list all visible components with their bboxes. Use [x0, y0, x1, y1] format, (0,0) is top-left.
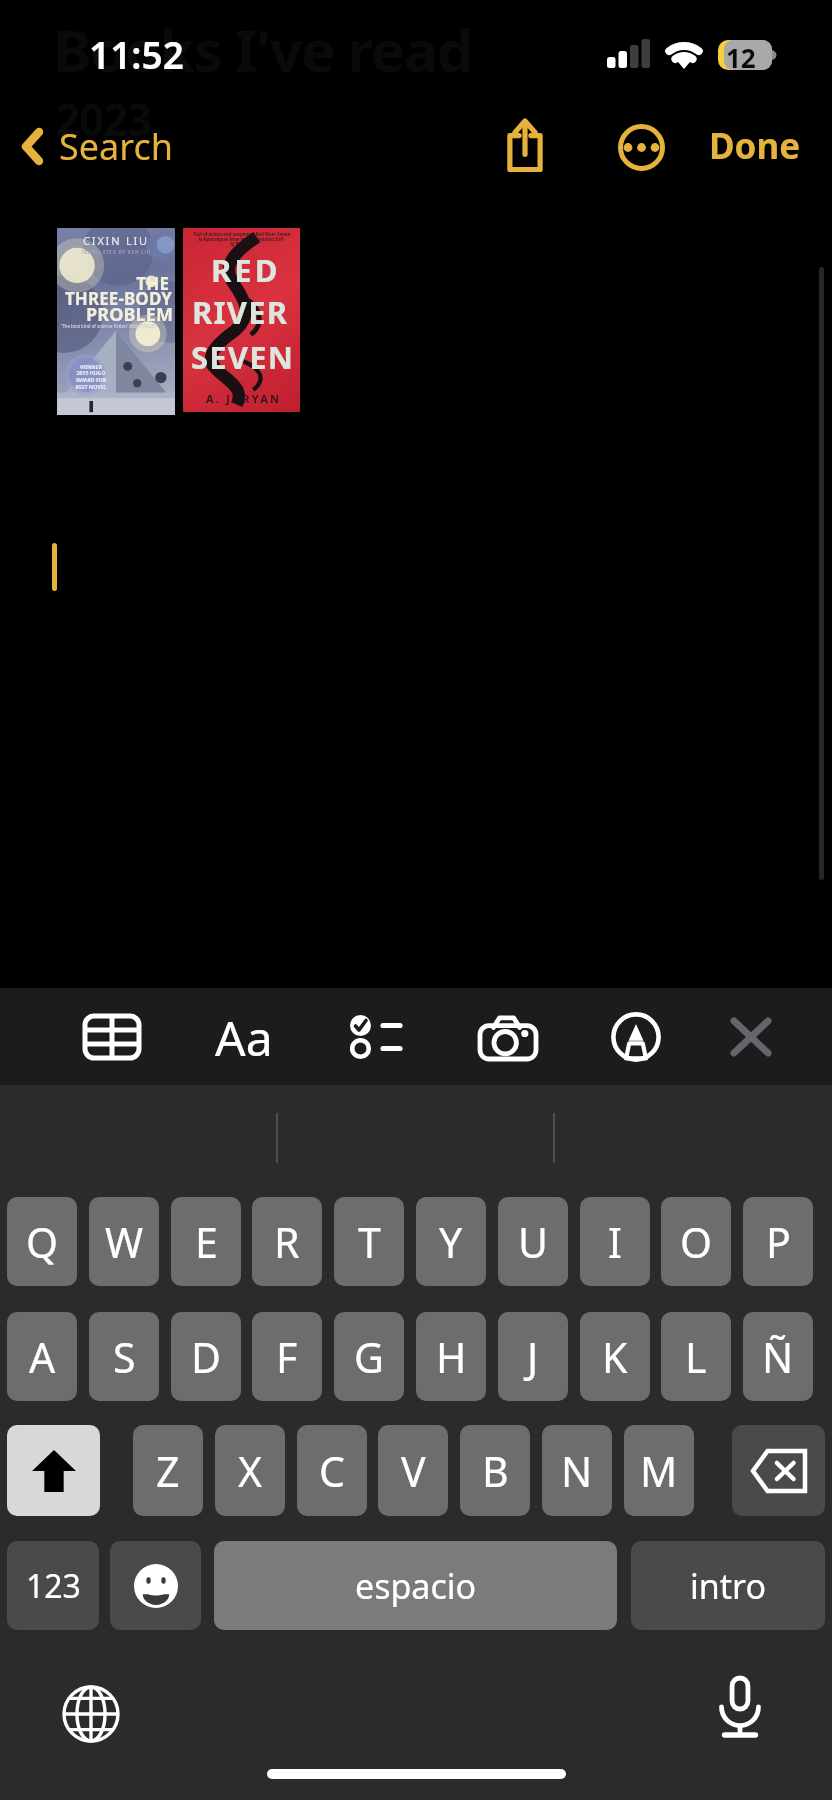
button[interactable]: Ñ [743, 1312, 813, 1401]
button[interactable]: T [334, 1197, 404, 1286]
staticText: Y [439, 1214, 463, 1270]
staticText: B [482, 1443, 509, 1499]
button[interactable]: G [334, 1312, 404, 1401]
staticText: 12 [726, 40, 756, 75]
button[interactable]: M [624, 1425, 694, 1516]
staticText: V [401, 1443, 426, 1499]
staticText: 'The best kind of science fiction' KIM S… [61, 323, 175, 329]
staticText: C [319, 1443, 345, 1499]
staticText: M [640, 1443, 678, 1499]
button[interactable]: U [498, 1197, 568, 1286]
button[interactable]: K [580, 1312, 650, 1401]
button[interactable]: Close [716, 1003, 786, 1071]
staticText: PROBLEM [57, 302, 173, 327]
button[interactable]: Dictation [705, 1672, 775, 1742]
button[interactable]: Share [490, 109, 560, 182]
button[interactable]: Backspace [732, 1425, 825, 1516]
staticText: A [29, 1329, 56, 1385]
button[interactable]: L [661, 1312, 731, 1401]
staticText: S [113, 1329, 136, 1385]
staticText: A. J. RYAN [206, 391, 282, 406]
staticText: RED [211, 249, 281, 291]
staticText: 123 [26, 1564, 81, 1608]
staticText: Q [26, 1214, 59, 1270]
button[interactable]: Search [10, 116, 183, 179]
button[interactable]: J [498, 1312, 568, 1401]
button[interactable]: V [378, 1425, 448, 1516]
button[interactable]: More options [606, 112, 676, 182]
staticText: TRANSLATED BY KEN LIU [57, 249, 175, 255]
button[interactable]: Done [700, 117, 810, 175]
button[interactable]: D [171, 1312, 241, 1401]
staticText: W [105, 1214, 144, 1270]
staticText: espacio [355, 1563, 477, 1609]
button[interactable]: H [416, 1312, 486, 1401]
button[interactable]: X [215, 1425, 285, 1516]
button[interactable]: Shift [7, 1425, 100, 1516]
staticText: Search [59, 122, 173, 171]
button[interactable]: F [252, 1312, 322, 1401]
staticText: T [358, 1214, 381, 1270]
staticText: J [527, 1329, 539, 1385]
staticText: L [685, 1329, 707, 1385]
button[interactable]: Emoji [110, 1541, 201, 1630]
button[interactable]: Checklist [336, 1004, 414, 1070]
button[interactable]: Markup [601, 1002, 671, 1072]
button[interactable]: Y [416, 1197, 486, 1286]
button[interactable]: Format [205, 1002, 283, 1072]
staticText: THREE-BODY [57, 287, 172, 310]
staticText: intro [690, 1563, 766, 1609]
button[interactable]: I [580, 1197, 650, 1286]
staticText: G [354, 1329, 384, 1385]
button[interactable]: Table [73, 1004, 151, 1070]
staticText: E [195, 1214, 218, 1270]
staticText: SEVEN [191, 336, 295, 378]
button[interactable]: O [661, 1197, 731, 1286]
staticText: Aa [215, 1005, 273, 1070]
button[interactable]: S [89, 1312, 159, 1401]
staticText: 11:52 [89, 29, 184, 79]
button[interactable]: espacio [214, 1541, 617, 1630]
staticText: R [274, 1214, 300, 1270]
button[interactable]: A [7, 1312, 77, 1401]
staticText: P [766, 1214, 791, 1270]
staticText: Ñ [762, 1329, 794, 1385]
button[interactable]: P [743, 1197, 813, 1286]
staticText: O [680, 1214, 713, 1270]
button[interactable]: Change keyboard [56, 1679, 126, 1749]
staticText: U [518, 1214, 548, 1270]
button[interactable]: W [89, 1197, 159, 1286]
staticText: 2023 [55, 89, 151, 149]
staticText: N [561, 1443, 593, 1499]
staticText: I [608, 1214, 622, 1270]
button[interactable]: C [297, 1425, 367, 1516]
button[interactable]: intro [631, 1541, 825, 1630]
button[interactable]: 123 [7, 1541, 99, 1630]
button[interactable]: Z [133, 1425, 203, 1516]
button[interactable]: Q [7, 1197, 77, 1286]
button[interactable]: Camera [469, 1003, 547, 1071]
staticText: D [191, 1329, 221, 1385]
staticText: Books I've read [53, 10, 472, 89]
staticText: X [238, 1443, 263, 1499]
staticText: WINNER 2015 HUGO AWARD FOR BEST NOVEL [70, 363, 112, 391]
button[interactable]: E [171, 1197, 241, 1286]
staticText: Z [156, 1443, 180, 1499]
staticText: H [436, 1329, 467, 1385]
staticText: THE [57, 272, 169, 295]
button[interactable]: R [252, 1197, 322, 1286]
staticText: F [276, 1329, 298, 1385]
staticText: CIXIN LIU [57, 233, 175, 248]
button[interactable]: N [542, 1425, 612, 1516]
staticText: RIVER [192, 291, 289, 333]
staticText: K [602, 1329, 628, 1385]
button[interactable]: B [460, 1425, 530, 1516]
staticText: 'Full of action and suspense, Red River … [188, 231, 295, 248]
